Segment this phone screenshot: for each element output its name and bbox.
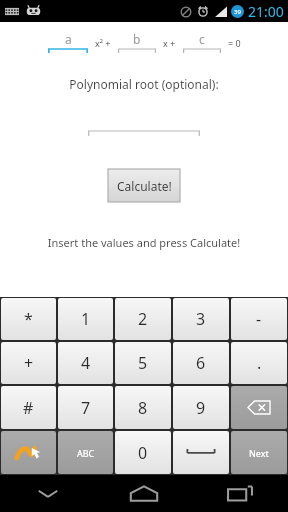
staticText: a	[65, 31, 72, 47]
staticText: 8	[138, 397, 148, 419]
staticText: 1	[81, 308, 91, 330]
button[interactable]: ABC	[58, 431, 113, 474]
staticText: 39	[234, 8, 241, 16]
staticText: 21:00	[248, 2, 284, 21]
staticText: Insert the values and press Calculate!	[0, 235, 288, 250]
staticText: c	[199, 31, 205, 47]
button[interactable]: Home	[96, 475, 192, 512]
button[interactable]: Hide keyboard	[0, 475, 96, 512]
button[interactable]: Recent apps	[192, 475, 288, 512]
staticText: Next	[249, 447, 269, 459]
button[interactable]: Space	[173, 431, 229, 474]
button[interactable]: 8	[115, 386, 171, 429]
button[interactable]: b	[118, 31, 156, 53]
button[interactable]: a	[48, 31, 88, 53]
staticText: .	[257, 352, 262, 374]
staticText: 7	[81, 397, 91, 419]
staticText: x² +	[95, 37, 111, 49]
button[interactable]: 5	[115, 342, 171, 384]
staticText: = 0	[228, 37, 241, 49]
staticText: ABC	[77, 447, 95, 459]
button[interactable]: #	[1, 386, 56, 429]
button[interactable]: 0	[115, 431, 171, 474]
button[interactable]: 2	[115, 298, 171, 340]
staticText: -	[256, 308, 262, 330]
button[interactable]: Calculate!	[108, 169, 180, 202]
button[interactable]	[88, 118, 200, 136]
staticText: 0	[138, 442, 148, 464]
staticText: #	[23, 397, 34, 419]
button[interactable]: c	[183, 31, 221, 53]
staticText: Polynomial root (optional):	[0, 76, 288, 92]
staticText: 5	[138, 352, 148, 374]
button[interactable]: 4	[58, 342, 113, 384]
button[interactable]: Swype input	[1, 431, 56, 474]
staticText: Calculate!	[117, 178, 172, 194]
staticText: *	[24, 308, 33, 330]
staticText: 6	[196, 352, 206, 374]
button[interactable]: Delete	[231, 386, 287, 429]
button[interactable]: *	[1, 298, 56, 340]
staticText: b	[133, 31, 141, 47]
button[interactable]: 6	[173, 342, 229, 384]
staticText: x +	[163, 37, 176, 49]
button[interactable]: Next	[231, 431, 287, 474]
staticText: 4	[81, 352, 91, 374]
button[interactable]: .	[231, 342, 287, 384]
staticText: 3	[196, 308, 206, 330]
button[interactable]: +	[1, 342, 56, 384]
button[interactable]: 9	[173, 386, 229, 429]
staticText: +	[24, 352, 34, 374]
button[interactable]: -	[231, 298, 287, 340]
button[interactable]: 1	[58, 298, 113, 340]
staticText: 2	[138, 308, 148, 330]
staticText: 9	[196, 397, 206, 419]
button[interactable]: 3	[173, 298, 229, 340]
button[interactable]: 7	[58, 386, 113, 429]
